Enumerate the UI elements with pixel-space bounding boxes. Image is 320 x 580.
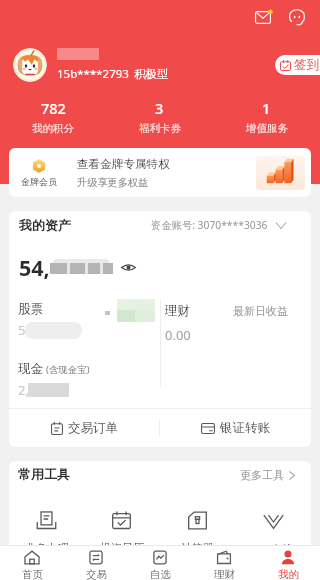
- staticText: 计算器: [181, 541, 214, 555]
- staticText: 查看金牌专属特权: [77, 157, 170, 172]
- staticText: 交易: [86, 568, 107, 580]
- staticText: 签到: [294, 57, 319, 73]
- staticText: 福利卡券: [139, 122, 181, 135]
- button[interactable]: 自选: [128, 546, 192, 580]
- staticText: 782: [41, 98, 66, 118]
- button[interactable]: 业务办理: [9, 511, 84, 555]
- button[interactable]: 1: [213, 98, 320, 135]
- staticText: 我的积分: [32, 122, 74, 135]
- button[interactable]: 交易: [64, 546, 128, 580]
- staticText: 更多工具: [240, 468, 284, 482]
- staticText: 15b****2793: [57, 66, 129, 82]
- button[interactable]: 资金账号: 3070****3036: [151, 218, 286, 232]
- button[interactable]: 3: [106, 98, 213, 135]
- button[interactable]: VIP专线: [235, 511, 311, 556]
- staticText: 理财: [214, 568, 235, 580]
- staticText: 3: [155, 98, 164, 118]
- staticText: 0.00: [165, 326, 191, 344]
- staticText: 首页: [22, 568, 43, 580]
- staticText: 2,: [18, 381, 29, 399]
- staticText: 我的资产: [19, 217, 71, 233]
- staticText: 交易订单: [68, 420, 118, 436]
- staticText: 业务办理: [25, 541, 69, 555]
- staticText: 资金账号: 3070****3036: [151, 218, 268, 232]
- staticText: 银证转账: [220, 420, 270, 436]
- button[interactable]: 银证转账: [160, 409, 311, 447]
- staticText: 最新日收益: [233, 304, 288, 318]
- button[interactable]: 我的: [256, 546, 320, 580]
- staticText: 我的: [278, 568, 299, 580]
- staticText: 增值服务: [246, 122, 288, 135]
- button[interactable]: 计算器: [159, 511, 235, 555]
- button[interactable]: 更多工具: [240, 468, 295, 482]
- button[interactable]: 首页: [0, 546, 64, 580]
- staticText: 金牌会员: [21, 176, 57, 187]
- staticText: 理财: [165, 303, 190, 319]
- staticText: 积极型: [134, 67, 169, 81]
- button[interactable]: Customer service: [285, 5, 309, 29]
- button[interactable]: 理财: [192, 546, 256, 580]
- staticText: 现金: [18, 361, 43, 377]
- staticText: (含现金宝): [46, 363, 90, 376]
- staticText: 1: [262, 98, 271, 118]
- button[interactable]: 金牌会员: [9, 148, 311, 197]
- staticText: 升级享更多权益: [77, 176, 149, 189]
- button[interactable]: 782: [0, 98, 106, 135]
- staticText: 股票: [18, 301, 43, 317]
- button[interactable]: 投资日历: [84, 511, 159, 555]
- staticText: 54,: [19, 253, 50, 282]
- button[interactable]: Profile avatar: [13, 48, 47, 82]
- staticText: 投资日历: [100, 541, 144, 555]
- staticText: 自选: [150, 568, 171, 580]
- staticText: 5: [18, 321, 26, 339]
- button[interactable]: 签到: [275, 55, 320, 75]
- button[interactable]: Messages: [251, 5, 275, 29]
- staticText: VIP专线: [254, 541, 293, 556]
- button[interactable]: 交易订单: [9, 409, 159, 447]
- staticText: 常用工具: [18, 466, 70, 482]
- button[interactable]: Toggle balance visibility: [121, 262, 136, 273]
